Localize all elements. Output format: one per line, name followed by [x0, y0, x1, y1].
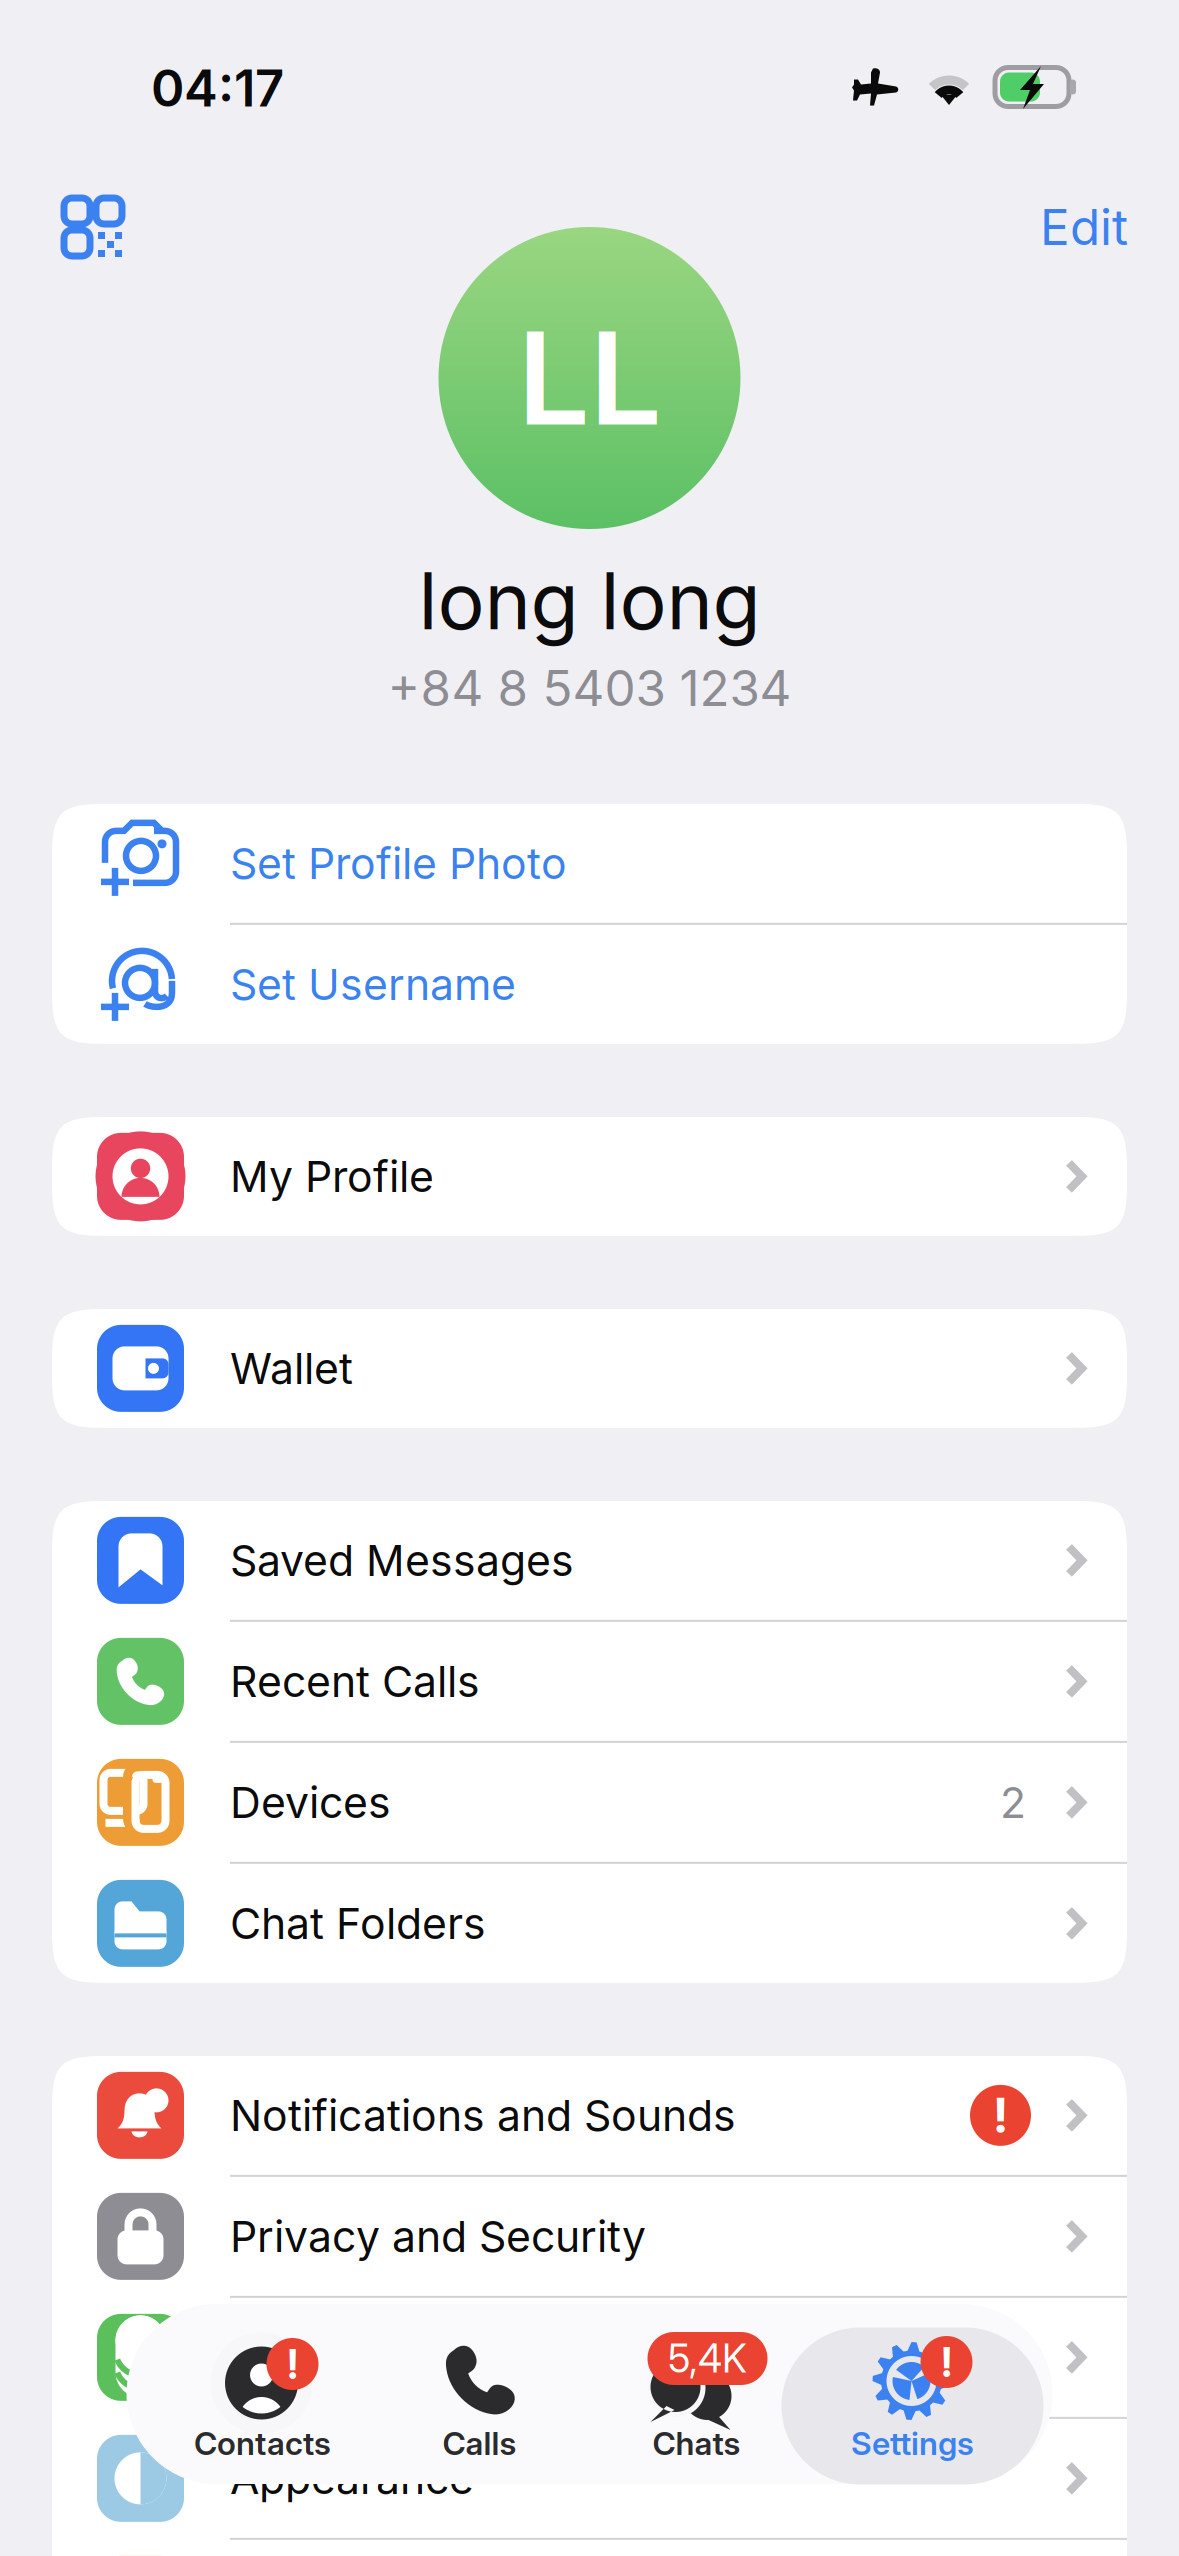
button[interactable]: Chat Folders: [52, 1864, 1127, 1983]
button[interactable]: Saved Messages: [52, 1501, 1127, 1620]
staticText: 2: [1000, 1777, 1026, 1828]
button[interactable]: Recent Calls: [52, 1622, 1127, 1741]
staticText: Devices: [230, 1777, 391, 1828]
staticText: Chat Folders: [230, 1898, 486, 1949]
button[interactable]: Appearance: [52, 2419, 1127, 2538]
staticText: !: [941, 2337, 951, 2387]
staticText: 5,4K: [668, 2335, 747, 2382]
staticText: +84 8 5403 1234: [387, 658, 791, 718]
button[interactable]: Calls: [126, 2304, 1052, 2484]
staticText: Notifications and Sounds: [230, 2090, 736, 2141]
button[interactable]: Privacy and Security: [52, 2177, 1127, 2296]
button[interactable]: Edit: [1040, 197, 1128, 257]
staticText: !: [992, 2086, 1008, 2144]
button[interactable]: Set Profile Photo: [52, 804, 1127, 923]
staticText: Recent Calls: [230, 1656, 480, 1707]
staticText: Calls: [442, 2424, 516, 2463]
staticText: Privacy and Security: [230, 2211, 646, 2262]
staticText: Set Profile Photo: [230, 838, 567, 889]
button[interactable]: Scan QR code: [64, 198, 122, 256]
button[interactable]: Set Username: [52, 925, 1127, 1044]
staticText: My Profile: [230, 1151, 434, 1202]
staticText: Saved Messages: [230, 1535, 574, 1586]
staticText: long long: [418, 553, 760, 648]
button[interactable]: My Profile: [52, 1117, 1127, 1236]
button[interactable]: Wallet: [52, 1309, 1127, 1428]
button[interactable]: !: [126, 2304, 1052, 2484]
staticText: Appearance: [230, 2453, 474, 2504]
button[interactable]: Notifications and Sounds: [52, 2056, 1127, 2175]
button[interactable]: !: [126, 2304, 1052, 2484]
staticText: 04:17: [151, 57, 284, 119]
button[interactable]: 5,4K: [126, 2304, 1052, 2484]
staticText: Wallet: [230, 1343, 353, 1394]
staticText: Edit: [1040, 197, 1128, 257]
staticText: Contacts: [194, 2424, 331, 2463]
button[interactable]: Devices: [52, 1743, 1127, 1862]
staticText: Data and Storage: [230, 2332, 580, 2383]
button[interactable]: Data and Storage: [52, 2298, 1127, 2417]
staticText: LL: [517, 301, 661, 455]
staticText: Chats: [652, 2424, 740, 2463]
staticText: !: [287, 2339, 297, 2389]
staticText: Settings: [851, 2424, 974, 2463]
staticText: Set Username: [230, 959, 516, 1010]
